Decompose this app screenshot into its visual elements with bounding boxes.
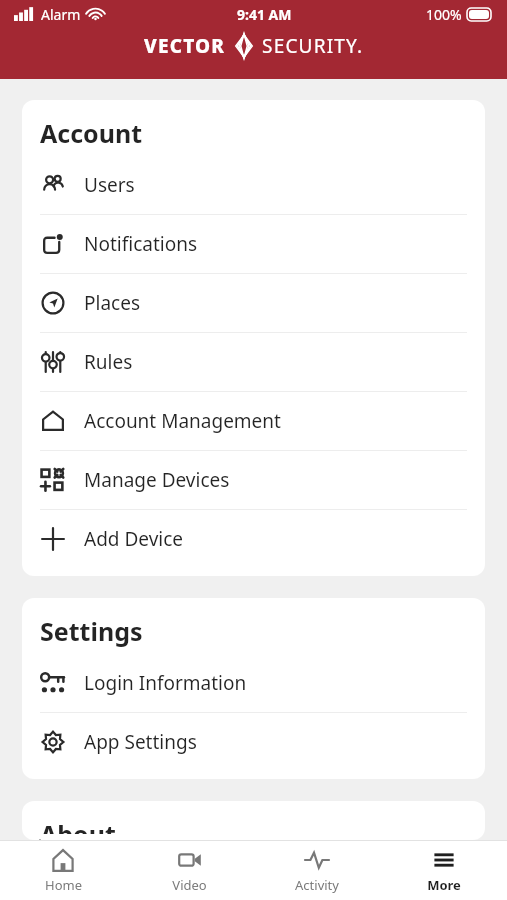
button[interactable]: Video bbox=[126, 841, 253, 900]
button[interactable]: Users bbox=[22, 156, 485, 215]
staticText: Places bbox=[84, 290, 140, 316]
staticText: Notifications bbox=[84, 231, 198, 257]
staticText: Settings bbox=[40, 614, 143, 648]
staticText: Users bbox=[84, 172, 135, 198]
staticText: Alarm bbox=[41, 5, 81, 24]
staticText: Activity bbox=[295, 876, 339, 894]
staticText: 100% bbox=[426, 5, 462, 24]
staticText: App Settings bbox=[84, 729, 197, 755]
button[interactable]: App Settings bbox=[22, 713, 485, 771]
staticText: Manage Devices bbox=[84, 467, 230, 493]
staticText: VECTOR bbox=[144, 33, 226, 59]
button[interactable]: Activity bbox=[253, 841, 380, 900]
staticText: About bbox=[40, 817, 116, 834]
button[interactable]: Notifications bbox=[22, 215, 485, 274]
staticText: SECURITY. bbox=[262, 33, 364, 59]
button[interactable]: Add Device bbox=[22, 510, 485, 568]
button[interactable]: Login Information bbox=[22, 654, 485, 713]
staticText: 9:41 AM bbox=[237, 5, 292, 24]
button[interactable]: Places bbox=[22, 274, 485, 333]
button[interactable]: Account Management bbox=[22, 392, 485, 451]
staticText: Rules bbox=[84, 349, 133, 375]
button[interactable]: Home bbox=[0, 841, 126, 900]
staticText: Account bbox=[40, 116, 143, 150]
button[interactable]: More bbox=[380, 841, 507, 900]
staticText: Login Information bbox=[84, 670, 247, 696]
staticText: Add Device bbox=[84, 526, 184, 552]
staticText: More bbox=[427, 876, 461, 894]
button[interactable]: Rules bbox=[22, 333, 485, 392]
staticText: Video bbox=[172, 876, 207, 894]
staticText: Home bbox=[45, 876, 82, 894]
staticText: Account Management bbox=[84, 408, 281, 434]
button[interactable]: Manage Devices bbox=[22, 451, 485, 510]
